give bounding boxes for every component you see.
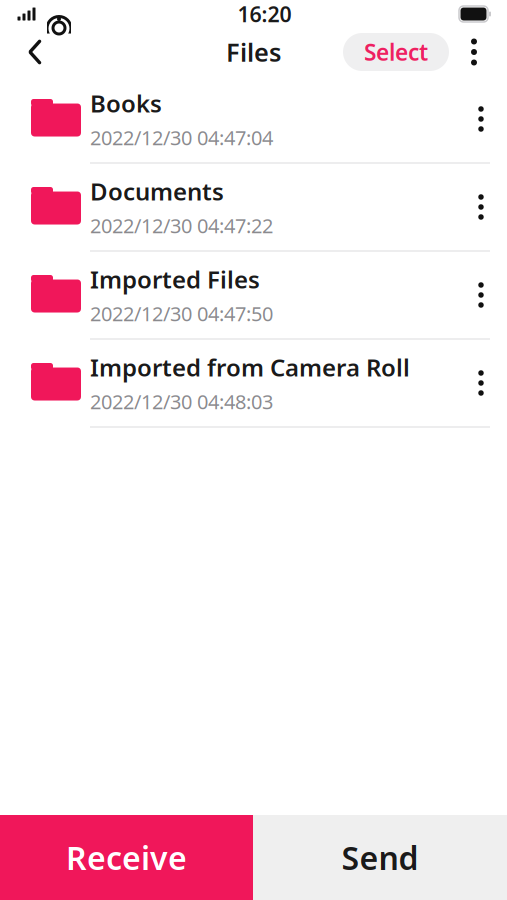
staticText: 2022/12/30 04:47:04 (90, 124, 273, 151)
button[interactable]: Documents (0, 164, 507, 250)
staticText: Receive (66, 836, 187, 879)
staticText: Imported Files (90, 263, 260, 295)
staticText: Imported from Camera Roll (90, 351, 410, 383)
staticText: 2022/12/30 04:47:22 (90, 212, 273, 239)
button[interactable]: Back (8, 29, 62, 75)
button[interactable]: Options for Imported from Camera Roll (455, 352, 507, 414)
button[interactable]: Books (0, 76, 507, 162)
staticText: Send (341, 836, 418, 879)
button[interactable]: Send (253, 815, 507, 900)
button[interactable]: Select (343, 33, 449, 71)
button[interactable]: More options (449, 29, 499, 75)
staticText: 2022/12/30 04:47:50 (90, 300, 273, 327)
staticText: Documents (90, 175, 224, 207)
button[interactable]: Options for Documents (455, 176, 507, 238)
button[interactable]: Imported Files (0, 252, 507, 338)
staticText: Files (226, 35, 281, 69)
staticText: 2022/12/30 04:48:03 (90, 388, 273, 415)
button[interactable]: Receive (0, 815, 253, 900)
staticText: Books (90, 87, 162, 119)
button[interactable]: Imported from Camera Roll (0, 340, 507, 426)
button[interactable]: Options for Books (455, 88, 507, 150)
staticText: Select (364, 37, 428, 67)
staticText: 16:20 (237, 0, 291, 28)
button[interactable]: Options for Imported Files (455, 264, 507, 326)
